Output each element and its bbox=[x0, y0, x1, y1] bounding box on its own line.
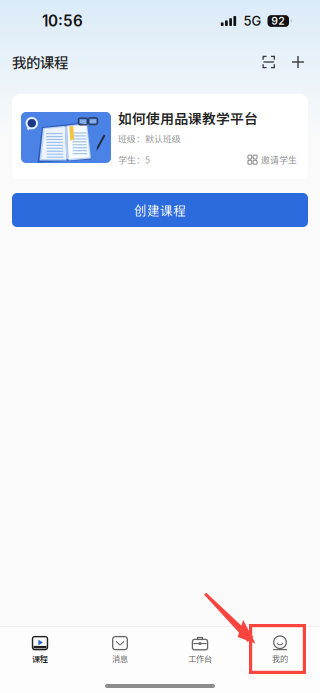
button[interactable]: 工作台 bbox=[160, 627, 240, 672]
staticText: 92 bbox=[271, 15, 285, 27]
staticText: 创建课程 bbox=[134, 201, 186, 219]
staticText: 班级：默认班级 bbox=[118, 132, 181, 145]
staticText: 10:56 bbox=[42, 12, 83, 30]
staticText: 邀请学生 bbox=[261, 153, 297, 166]
staticText: 如何使用品课教学平台 bbox=[118, 108, 258, 128]
button[interactable]: 邀请学生 bbox=[248, 153, 297, 166]
staticText: 5G bbox=[243, 13, 261, 29]
button[interactable]: 创建课程 bbox=[12, 193, 308, 227]
staticText: 工作台 bbox=[188, 653, 212, 664]
staticText: 学生：5 bbox=[118, 153, 150, 166]
button[interactable]: 我的 bbox=[240, 627, 320, 672]
button[interactable]: 课程 bbox=[0, 627, 80, 672]
button[interactable]: 添加课程 bbox=[286, 50, 310, 74]
button[interactable]: 如何使用品课教学平台 bbox=[12, 94, 308, 179]
staticText: 消息 bbox=[112, 653, 128, 664]
staticText: 我的 bbox=[272, 653, 288, 664]
staticText: 我的课程 bbox=[12, 52, 68, 72]
staticText: 课程 bbox=[32, 653, 48, 664]
button[interactable]: 消息 bbox=[80, 627, 160, 672]
button[interactable]: 扫一扫 bbox=[256, 50, 281, 74]
